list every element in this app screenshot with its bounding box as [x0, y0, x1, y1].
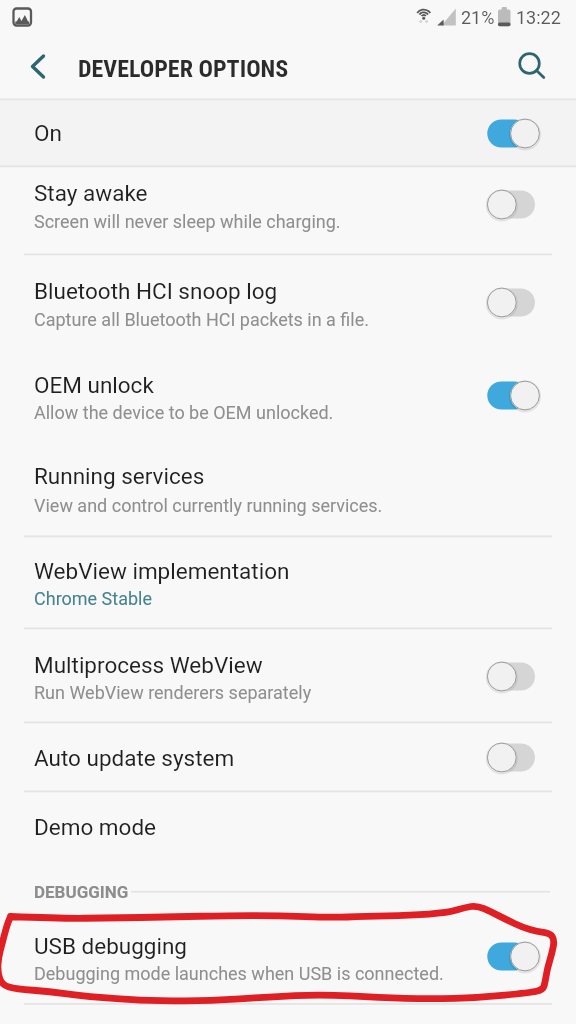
button[interactable]: Multiprocess WebView — [0, 630, 576, 722]
staticText: OEM unlock — [34, 372, 154, 398]
staticText: DEBUGGING — [34, 882, 129, 902]
button[interactable]: Bluetooth HCI snoop log — [0, 256, 576, 350]
staticText: Running services — [34, 463, 205, 489]
button[interactable]: Running services — [0, 444, 576, 536]
staticText: DEVELOPER OPTIONS — [78, 55, 289, 83]
staticText: Allow the device to be OEM unlocked. — [34, 402, 334, 423]
staticText: 13:22 — [516, 7, 561, 28]
button[interactable]: Demo mode — [0, 793, 576, 862]
staticText: Auto update system — [34, 745, 235, 771]
staticText: USB debugging — [34, 933, 188, 959]
button[interactable]: Switch on — [487, 380, 540, 411]
staticText: Run WebView renderers separately — [34, 682, 312, 703]
button[interactable]: Stay awake — [0, 168, 576, 254]
staticText: Debugging mode launches when USB is conn… — [34, 963, 444, 984]
button[interactable]: OEM unlock — [0, 350, 576, 444]
button[interactable]: Navigate up — [10, 41, 66, 97]
staticText: Bluetooth HCI snoop log — [34, 278, 278, 304]
staticText: 21% — [461, 7, 495, 28]
button[interactable]: Switch on — [487, 118, 540, 149]
button[interactable]: Auto update system — [0, 724, 576, 791]
button[interactable]: Switch off — [487, 742, 540, 773]
button[interactable]: Switch off — [487, 661, 540, 692]
staticText: WebView implementation — [34, 558, 290, 584]
staticText: Demo mode — [34, 814, 157, 840]
staticText: On — [34, 120, 62, 146]
button[interactable]: On — [0, 100, 576, 166]
staticText: Screen will never sleep while charging. — [34, 211, 341, 232]
staticText: Multiprocess WebView — [34, 652, 263, 678]
button[interactable]: WebView implementation — [0, 538, 576, 628]
staticText: Chrome Stable — [34, 588, 153, 609]
button[interactable]: Search — [502, 41, 558, 97]
button[interactable]: Switch on — [487, 941, 540, 972]
staticText: Stay awake — [34, 180, 148, 206]
button[interactable]: Switch off — [487, 189, 540, 220]
staticText: View and control currently running servi… — [34, 495, 383, 516]
button[interactable]: Switch off — [487, 287, 540, 318]
staticText: Capture all Bluetooth HCI packets in a f… — [34, 309, 370, 330]
button[interactable]: USB debugging — [0, 904, 576, 1003]
